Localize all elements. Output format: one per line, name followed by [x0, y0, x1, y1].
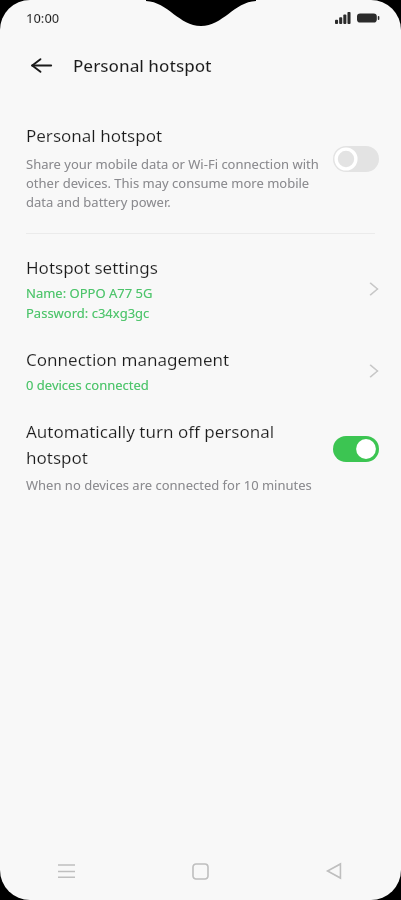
staticText: Share your mobile data or Wi-Fi connecti…	[26, 155, 319, 211]
button[interactable]: Recent apps	[0, 842, 133, 900]
button[interactable]: Personal hotspot	[0, 124, 401, 211]
button[interactable]: Automatically turn off personal hotspot	[0, 420, 401, 494]
button[interactable]: Home	[133, 842, 267, 900]
button[interactable]: Back	[267, 842, 401, 900]
staticText: Password: c34xg3gc	[26, 304, 150, 322]
staticText: Personal hotspot	[26, 124, 163, 147]
button[interactable]: Toggle on	[333, 436, 379, 462]
staticText: When no devices are connected for 10 min…	[26, 476, 312, 494]
button[interactable]: Toggle off	[333, 146, 379, 172]
button[interactable]: Hotspot settings	[0, 256, 401, 322]
staticText: Name: OPPO A77 5G	[26, 284, 153, 302]
staticText: Automatically turn off personal hotspot	[26, 420, 319, 469]
staticText: Hotspot settings	[26, 256, 158, 279]
staticText: Personal hotspot	[73, 54, 212, 77]
staticText: Connection management	[26, 348, 230, 371]
button[interactable]: Back	[26, 50, 56, 80]
staticText: 10:00	[26, 9, 60, 27]
button[interactable]: Connection management	[0, 348, 401, 394]
staticText: 0 devices connected	[26, 376, 149, 394]
